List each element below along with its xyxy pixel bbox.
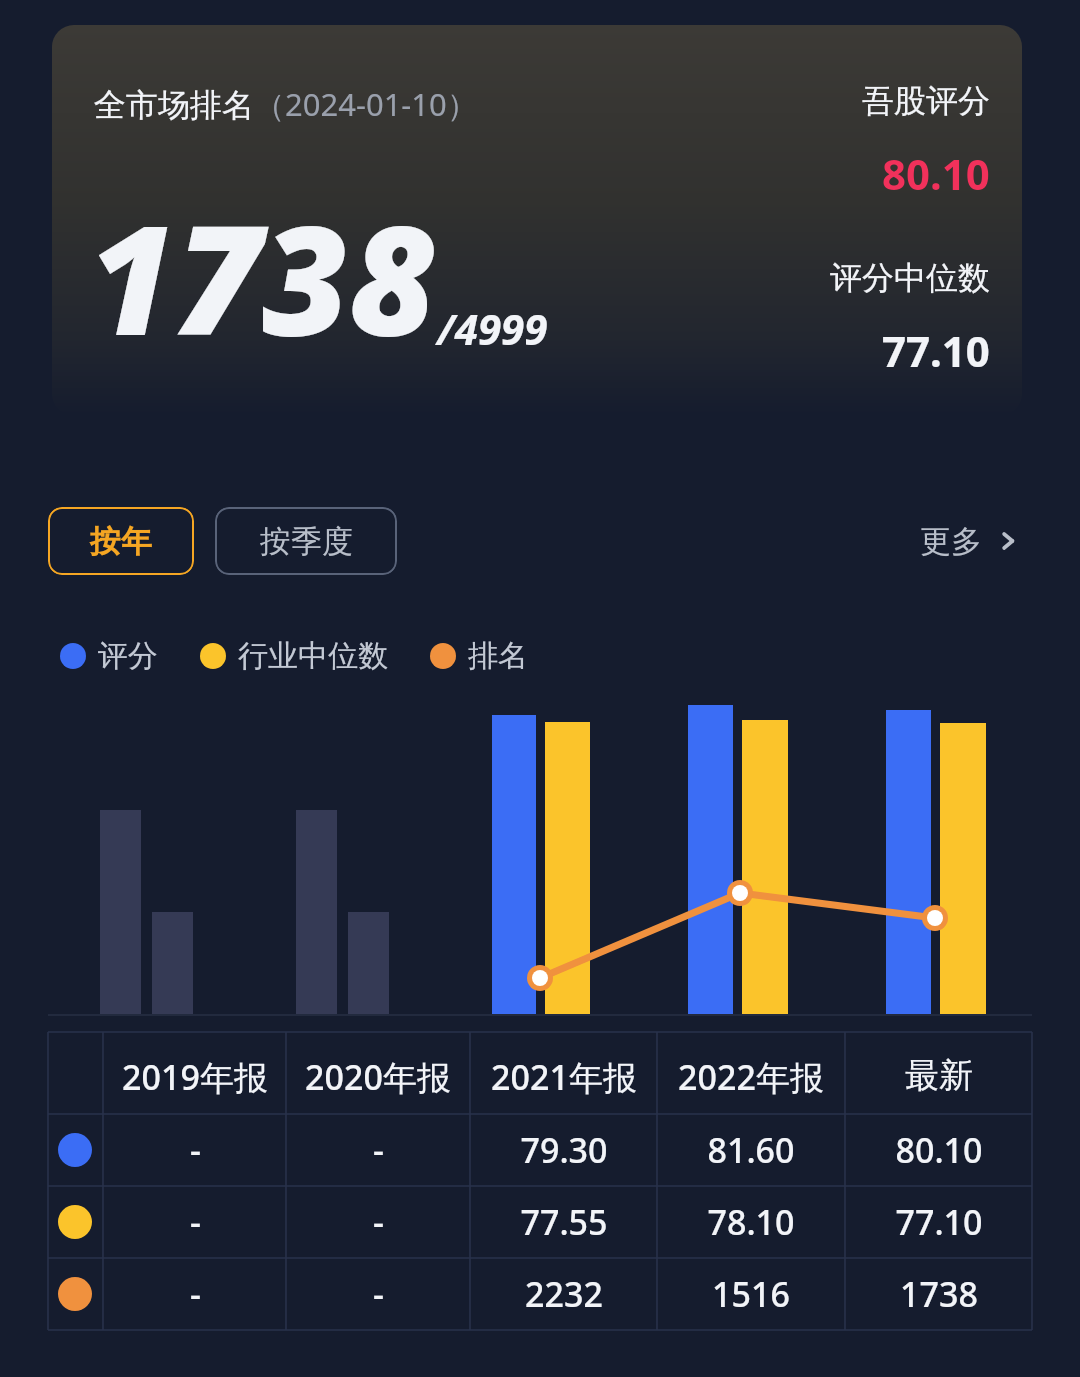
button[interactable]: 评分 bbox=[60, 637, 158, 675]
staticText: 80.10 bbox=[882, 145, 990, 202]
button[interactable]: 更多 bbox=[920, 510, 1022, 572]
staticText: - bbox=[190, 1271, 201, 1317]
staticText: - bbox=[373, 1271, 384, 1317]
button[interactable]: 全市场排名 bbox=[52, 25, 1022, 415]
staticText: - bbox=[190, 1127, 201, 1173]
button[interactable]: 按年 bbox=[48, 507, 194, 575]
staticText: 按季度 bbox=[260, 522, 353, 561]
button[interactable]: 行业中位数 bbox=[200, 637, 388, 675]
staticText: 评分 bbox=[98, 637, 158, 675]
staticText: 2232 bbox=[525, 1271, 603, 1317]
staticText: 排名 bbox=[468, 637, 528, 675]
staticText: - bbox=[190, 1199, 201, 1245]
staticText: 1516 bbox=[712, 1271, 790, 1317]
staticText: 2019年报 bbox=[122, 1054, 268, 1100]
staticText: 79.30 bbox=[520, 1127, 608, 1173]
staticText: 78.10 bbox=[707, 1199, 795, 1245]
staticText: 更多 bbox=[920, 522, 982, 561]
staticText: - bbox=[373, 1127, 384, 1173]
staticText: - bbox=[373, 1199, 384, 1245]
staticText: 2021年报 bbox=[491, 1054, 637, 1100]
staticText: 吾股评分 bbox=[862, 81, 990, 121]
staticText: 2020年报 bbox=[305, 1054, 451, 1100]
staticText: 77.10 bbox=[895, 1199, 983, 1245]
staticText: 81.60 bbox=[707, 1127, 795, 1173]
other: More bbox=[994, 527, 1022, 555]
staticText: （2024-01-10） bbox=[254, 83, 478, 125]
staticText: 评分中位数 bbox=[830, 258, 990, 298]
staticText: 77.55 bbox=[520, 1199, 608, 1245]
staticText: 80.10 bbox=[895, 1127, 983, 1173]
staticText: 最新 bbox=[905, 1054, 973, 1097]
staticText: 1738 bbox=[88, 175, 437, 379]
staticText: 2022年报 bbox=[678, 1054, 824, 1100]
staticText: /4999 bbox=[437, 300, 548, 357]
staticText: 1738 bbox=[900, 1271, 978, 1317]
staticText: 按年 bbox=[90, 522, 152, 561]
button[interactable]: 排名 bbox=[430, 637, 528, 675]
staticText: 行业中位数 bbox=[238, 637, 388, 675]
staticText: 全市场排名 bbox=[94, 85, 254, 125]
staticText: 77.10 bbox=[882, 322, 990, 379]
button[interactable]: 按季度 bbox=[215, 507, 397, 575]
